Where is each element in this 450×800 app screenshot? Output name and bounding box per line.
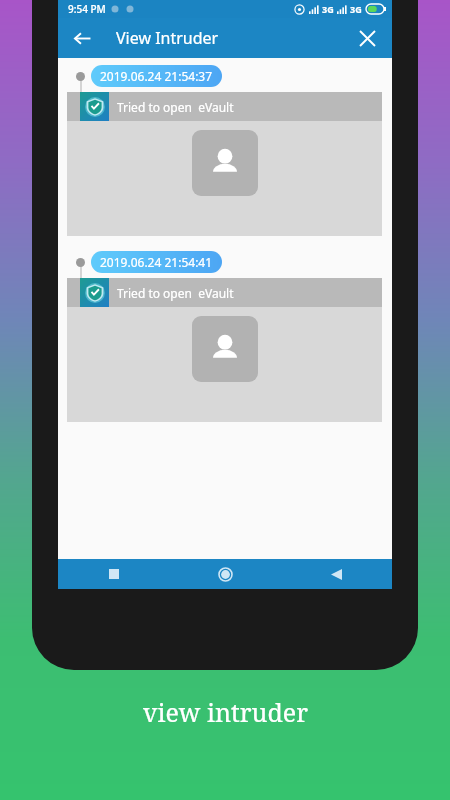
button[interactable]: Close xyxy=(350,21,384,55)
button[interactable]: 2019.06.24 21:54:41 xyxy=(100,254,213,270)
staticText: 9:54 PM xyxy=(68,2,106,16)
staticText: 3G xyxy=(350,3,362,15)
staticText: 2019.06.24 21:54:41 xyxy=(100,254,213,270)
button[interactable]: Tried to open eVault xyxy=(67,92,382,236)
staticText: 3G xyxy=(322,3,334,15)
staticText: Tried to open eVault xyxy=(117,99,234,115)
button[interactable]: Back xyxy=(281,559,392,589)
button[interactable]: Back xyxy=(64,20,100,56)
button[interactable]: 2019.06.24 21:54:37 xyxy=(100,68,213,84)
staticText: 2019.06.24 21:54:37 xyxy=(100,68,213,84)
button[interactable]: Recent apps xyxy=(58,559,170,589)
staticText: View Intruder xyxy=(116,27,219,49)
button[interactable]: Home xyxy=(170,559,281,589)
button[interactable]: Tried to open eVault xyxy=(67,278,382,422)
staticText: view intruder xyxy=(143,695,308,729)
staticText: Tried to open eVault xyxy=(117,285,234,301)
